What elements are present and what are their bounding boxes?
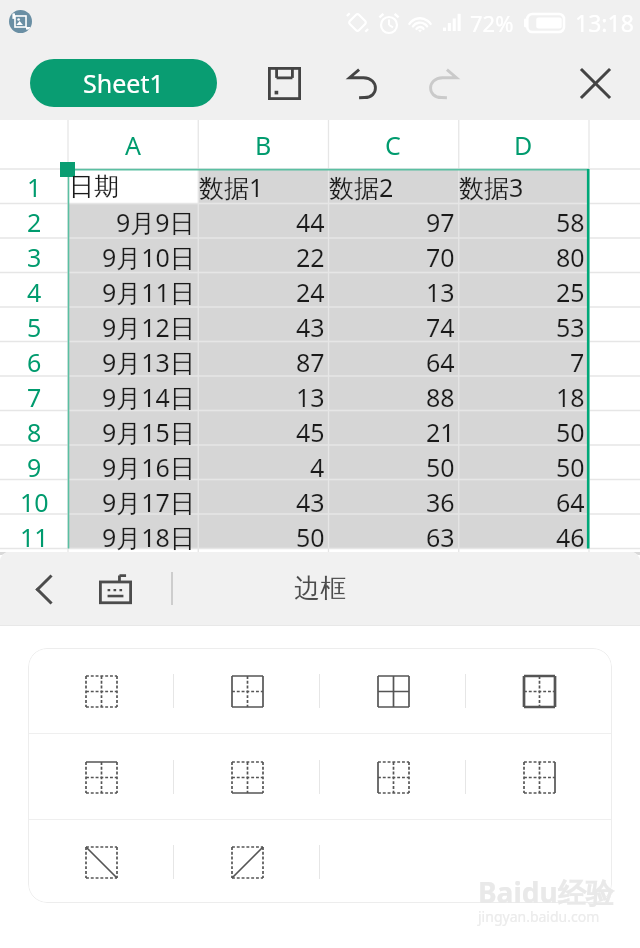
staticText: C [385, 128, 401, 162]
staticText: D [514, 128, 533, 162]
staticText: 50 [426, 450, 455, 484]
staticText: 22 [296, 240, 325, 274]
staticText: 88 [426, 380, 455, 414]
staticText: 9月13日 [102, 345, 195, 379]
staticText: 9月12日 [102, 310, 195, 344]
staticText: 45 [296, 415, 325, 449]
staticText: 64 [426, 345, 455, 379]
staticText: 3 [27, 240, 42, 274]
staticText: 63 [426, 520, 455, 554]
staticText: 25 [556, 275, 585, 309]
staticText: 43 [296, 310, 325, 344]
staticText: 数据2 [329, 170, 394, 204]
staticText: 9月9日 [116, 205, 195, 239]
staticText: 边框 [294, 572, 346, 605]
staticText: 24 [296, 275, 325, 309]
button[interactable]: Redo [418, 58, 468, 108]
button[interactable]: Keyboard [89, 560, 141, 618]
staticText: 44 [296, 205, 325, 239]
button[interactable]: Back [16, 560, 72, 618]
staticText: 70 [426, 240, 455, 274]
staticText: 9月11日 [102, 275, 195, 309]
button[interactable]: Left border [367, 751, 419, 803]
staticText: jingyan.baidu.com [478, 907, 600, 926]
staticText: 9月18日 [102, 520, 195, 554]
staticText: 74 [426, 310, 455, 344]
staticText: Baidu经验 [478, 873, 614, 911]
button[interactable]: No border [75, 665, 127, 717]
button[interactable]: Diagonal down border [75, 836, 127, 888]
staticText: Sheet1 [83, 66, 164, 100]
staticText: 53 [556, 310, 585, 344]
button[interactable]: Outer and inner borders [367, 665, 419, 717]
button[interactable]: Right border [513, 751, 565, 803]
staticText: 46 [556, 520, 585, 554]
staticText: 50 [296, 520, 325, 554]
staticText: 18 [556, 380, 585, 414]
button[interactable]: Top border [75, 751, 127, 803]
staticText: 7 [570, 345, 585, 379]
button[interactable]: Screenshot [9, 10, 32, 33]
staticText: 2 [27, 205, 42, 239]
staticText: 64 [556, 485, 585, 519]
staticText: 4 [310, 450, 325, 484]
staticText: 13 [426, 275, 455, 309]
staticText: 9 [27, 450, 42, 484]
staticText: 9月15日 [102, 415, 195, 449]
button[interactable]: Sheet1 [30, 59, 217, 107]
staticText: 7 [27, 380, 42, 414]
button[interactable]: Diagonal up border [221, 836, 273, 888]
staticText: 9月14日 [102, 380, 195, 414]
button[interactable]: All borders [221, 665, 273, 717]
button[interactable]: Bottom border [221, 751, 273, 803]
staticText: 数据3 [459, 170, 524, 204]
staticText: 13:18 [575, 7, 634, 38]
staticText: 10 [20, 485, 49, 519]
staticText: 43 [296, 485, 325, 519]
staticText: 36 [426, 485, 455, 519]
staticText: 50 [556, 450, 585, 484]
staticText: 8 [27, 415, 42, 449]
button[interactable]: Undo [338, 58, 388, 108]
button[interactable]: Save [259, 58, 309, 108]
staticText: 13 [296, 380, 325, 414]
button[interactable]: Close [570, 58, 620, 108]
staticText: 1 [27, 170, 42, 204]
staticText: 9月10日 [102, 240, 195, 274]
staticText: 21 [426, 415, 455, 449]
staticText: 9月17日 [102, 485, 195, 519]
staticText: 50 [556, 415, 585, 449]
staticText: 5 [27, 310, 42, 344]
staticText: 97 [426, 205, 455, 239]
staticText: B [255, 128, 272, 162]
button[interactable]: Thick box border [513, 665, 565, 717]
staticText: A [125, 128, 141, 162]
staticText: 80 [556, 240, 585, 274]
staticText: 6 [27, 345, 42, 379]
staticText: 58 [556, 205, 585, 239]
staticText: 87 [296, 345, 325, 379]
staticText: 数据1 [199, 170, 264, 204]
staticText: 72% [470, 8, 514, 38]
staticText: 4 [27, 275, 42, 309]
staticText: 9月16日 [102, 450, 195, 484]
staticText: 日期 [69, 171, 119, 202]
staticText: 11 [20, 520, 49, 554]
